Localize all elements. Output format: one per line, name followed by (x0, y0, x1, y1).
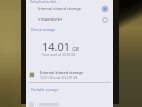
staticText: Internal shared storage (40, 70, 84, 75)
staticText: 14.01 GB used of 32.00 GB (40, 76, 78, 80)
button[interactable]: Internal shared storage (26, 3, 113, 14)
staticText: STRAWBERRY (39, 103, 59, 107)
button[interactable]: STRAWBERRY (26, 100, 113, 107)
staticText: 14.01 (42, 39, 71, 54)
staticText: Internal shared storage (38, 6, 102, 11)
button[interactable]: STRAWBERRY (26, 14, 113, 25)
other: Selected (102, 6, 108, 12)
other: Not selected (102, 17, 108, 23)
staticText: STRAWBERRY (38, 17, 102, 22)
button[interactable]: Internal shared storage (26, 67, 113, 82)
staticText: GB (71, 46, 79, 53)
staticText: Default write disk (30, 0, 57, 4)
staticText: Portable storage (31, 87, 59, 92)
staticText: Total used of 32.00 GB (42, 53, 76, 57)
staticText: Device storage (31, 27, 56, 32)
